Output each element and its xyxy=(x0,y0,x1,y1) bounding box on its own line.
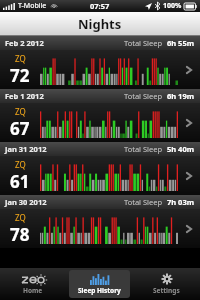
staticText: Feb 2 2012 xyxy=(5,38,44,48)
button[interactable]: Settings xyxy=(136,270,197,298)
staticText: Total Sleep xyxy=(124,91,163,101)
staticText: ZQ xyxy=(15,106,26,117)
staticText: 72 xyxy=(10,64,30,87)
staticText: Jan 31 2012 xyxy=(5,144,47,154)
staticText: ZQ xyxy=(15,212,26,223)
button[interactable]: Jan 30 2012 xyxy=(0,195,200,248)
staticText: 61 xyxy=(10,170,30,193)
staticText: 67 xyxy=(10,117,30,140)
button[interactable]: Home xyxy=(3,270,63,298)
staticText: Nights xyxy=(78,15,122,33)
button[interactable]: Feb 1 2012 xyxy=(0,89,200,142)
staticText: Settings xyxy=(153,286,180,295)
staticText: T-Mobile xyxy=(18,1,47,11)
staticText: ZQ xyxy=(15,159,26,170)
staticText: ZQ xyxy=(15,53,26,64)
button[interactable]: Feb 2 2012 xyxy=(0,36,200,89)
staticText: 100% xyxy=(163,1,182,11)
staticText: Feb 1 2012 xyxy=(5,91,44,101)
staticText: 5h 40m xyxy=(167,144,195,154)
staticText: 7h 03m xyxy=(167,197,195,207)
staticText: 6h 55m xyxy=(167,38,195,48)
staticText: 6h 19m xyxy=(167,91,195,101)
staticText: Total Sleep xyxy=(124,144,163,154)
staticText: Total Sleep xyxy=(124,38,163,48)
staticText: 78 xyxy=(10,223,30,246)
staticText: 07:57 xyxy=(90,1,110,11)
button[interactable]: Jan 31 2012 xyxy=(0,142,200,195)
button[interactable]: Sleep History xyxy=(69,270,130,298)
staticText: Sleep History xyxy=(78,286,121,295)
staticText: Total Sleep xyxy=(124,197,163,207)
staticText: Jan 30 2012 xyxy=(5,197,47,207)
staticText: Home xyxy=(23,286,43,295)
